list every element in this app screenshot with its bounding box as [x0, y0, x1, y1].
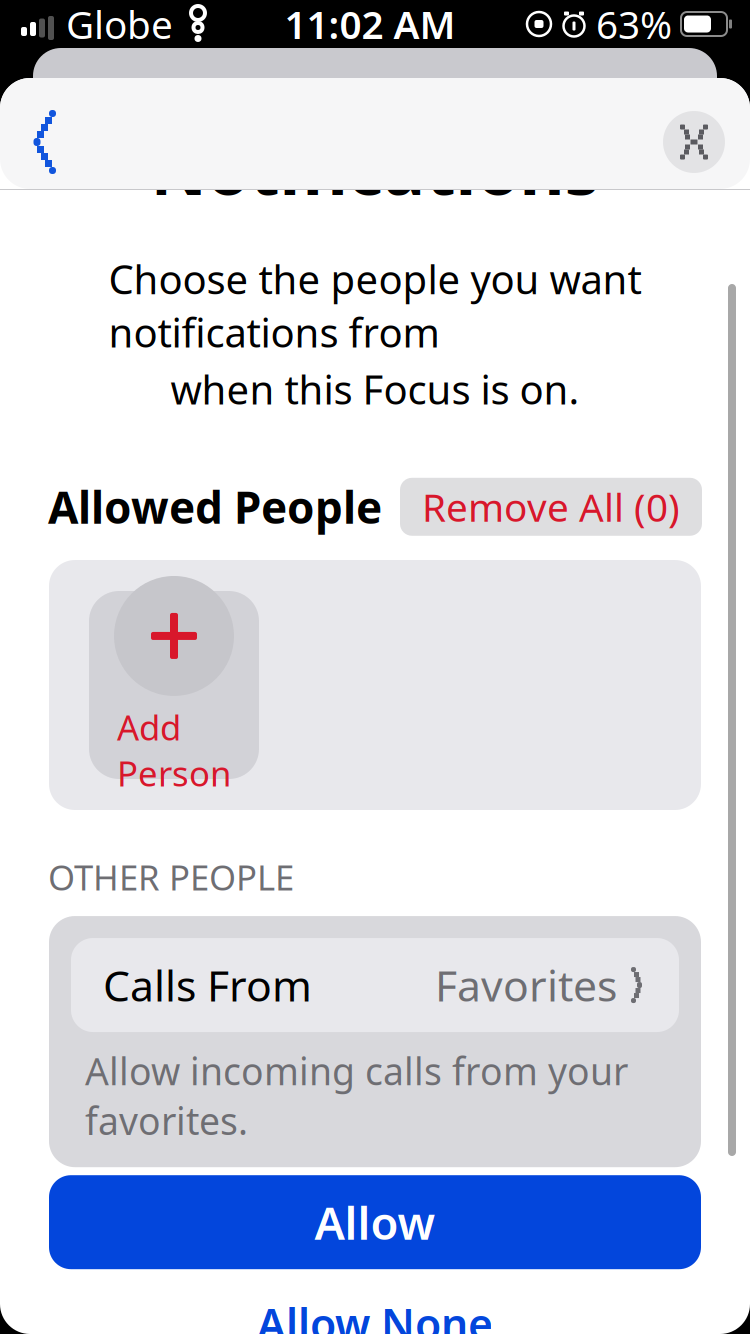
staticText: Allowed People — [48, 478, 382, 536]
staticText: Remove All (0) — [422, 481, 680, 532]
staticText: Allow incoming calls from your favorites… — [85, 1046, 628, 1145]
staticText: when this Focus is on. — [170, 362, 579, 416]
staticText: 63% — [596, 0, 672, 50]
staticText: Choose the people you want notifications… — [108, 252, 641, 358]
button[interactable]: Allow — [49, 1175, 701, 1269]
staticText: Add Person — [117, 704, 231, 796]
staticText: Notifications — [150, 122, 599, 214]
button[interactable]: Allow None — [257, 1295, 493, 1334]
staticText: Favorites — [435, 957, 617, 1013]
button[interactable]: Calls From — [71, 938, 679, 1032]
staticText: Allow None — [257, 1295, 493, 1334]
button[interactable]: Remove All (0) — [400, 478, 702, 536]
button[interactable]: Close — [652, 102, 736, 182]
staticText: OTHER PEOPLE — [48, 854, 294, 900]
staticText: Globe — [66, 0, 173, 50]
staticText: 11:02 AM — [284, 0, 455, 50]
button[interactable]: Back — [14, 102, 68, 182]
staticText: Allow — [314, 1192, 435, 1252]
button[interactable]: Add Person — [89, 591, 259, 779]
staticText: Calls From — [103, 957, 312, 1013]
